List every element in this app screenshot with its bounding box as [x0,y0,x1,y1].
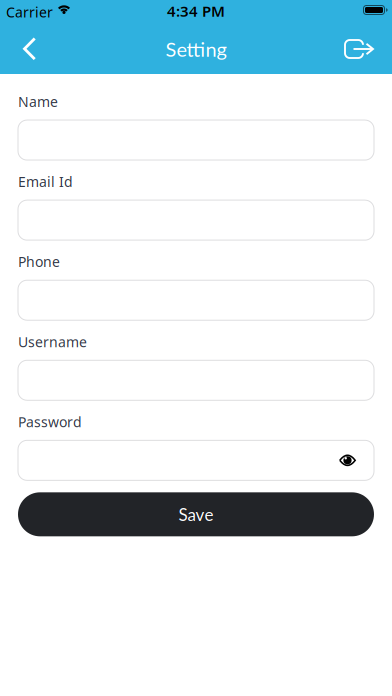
staticText: Email Id [18,172,73,191]
button[interactable]: Save [18,492,374,536]
staticText: Carrier [6,2,53,22]
staticText: 4:34 PM [167,1,225,21]
button[interactable]: Show Password [339,454,374,467]
staticText: Name [18,92,58,111]
staticText: Password [18,412,82,431]
staticText: Username [18,332,87,351]
button[interactable]: Log Out [332,24,392,74]
button[interactable]: Back [0,24,48,74]
staticText: Setting [165,37,226,61]
staticText: Save [178,504,213,524]
staticText: Phone [18,252,60,271]
